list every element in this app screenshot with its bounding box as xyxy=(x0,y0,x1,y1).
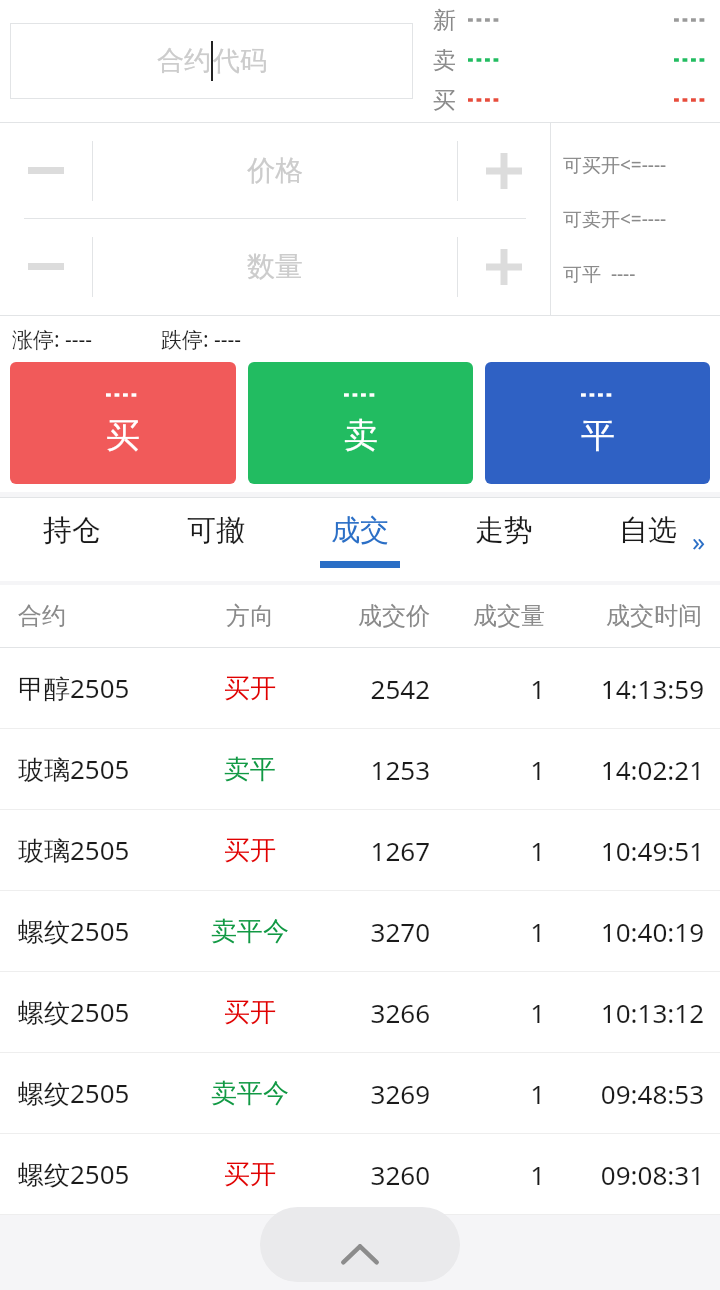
staticText: 1 xyxy=(430,833,545,868)
staticText: 卖平今 xyxy=(185,915,315,948)
staticText: 卖平今 xyxy=(185,1077,315,1110)
button[interactable]: Decrease 价格 xyxy=(0,123,92,218)
button[interactable]: 价格 xyxy=(93,123,457,218)
button[interactable]: 自选 xyxy=(576,498,720,581)
staticText: 买 xyxy=(433,86,456,115)
staticText: 可卖开<=---- xyxy=(563,206,667,232)
staticText: 螺纹2505 xyxy=(18,1075,185,1111)
staticText: 买开 xyxy=(185,1158,315,1191)
staticText: 09:08:31 xyxy=(545,1157,704,1192)
button[interactable]: 买 xyxy=(10,362,236,484)
staticText: 14:02:21 xyxy=(545,752,704,787)
staticText: 买开 xyxy=(185,834,315,867)
staticText: 1267 xyxy=(315,833,430,868)
button[interactable]: 螺纹2505 xyxy=(0,891,720,971)
staticText: 1 xyxy=(430,1157,545,1192)
staticText: 卖 xyxy=(433,46,456,75)
staticText: 成交量 xyxy=(430,601,545,631)
staticText: 1 xyxy=(430,1076,545,1111)
button[interactable]: Expand panel xyxy=(260,1207,460,1282)
staticText: 1 xyxy=(430,995,545,1030)
staticText: 买开 xyxy=(185,996,315,1029)
staticText: » xyxy=(692,523,706,557)
button[interactable]: Decrease 数量 xyxy=(0,219,92,314)
staticText: 可撤 xyxy=(187,512,245,549)
staticText: 玻璃2505 xyxy=(18,751,185,787)
staticText: 可买开<=---- xyxy=(563,152,667,178)
button[interactable]: 成交 xyxy=(288,498,432,581)
staticText: 成交 xyxy=(331,512,389,549)
button[interactable]: 可撤 xyxy=(144,498,288,581)
staticText: 玻璃2505 xyxy=(18,832,185,868)
button[interactable]: Increase 价格 xyxy=(458,123,550,218)
staticText: 10:49:51 xyxy=(545,833,704,868)
staticText: 1253 xyxy=(315,752,430,787)
staticText: 买开 xyxy=(185,672,315,705)
staticText: 涨停: ---- xyxy=(12,325,93,354)
button[interactable]: More tabs xyxy=(682,523,716,557)
staticText: 平 xyxy=(581,414,615,457)
button[interactable]: 甲醇2505 xyxy=(0,648,720,728)
staticText: 卖平 xyxy=(185,753,315,786)
button[interactable]: 数量 xyxy=(93,219,457,314)
staticText: 价格 xyxy=(247,153,303,188)
staticText: 09:48:53 xyxy=(545,1076,704,1111)
button[interactable]: 卖 xyxy=(248,362,473,484)
staticText: 卖 xyxy=(344,414,378,457)
button[interactable]: 合约 xyxy=(10,23,413,99)
button[interactable]: 螺纹2505 xyxy=(0,972,720,1052)
staticText: 可平 ---- xyxy=(563,261,636,287)
button[interactable]: Increase 数量 xyxy=(458,219,550,314)
staticText: 合约 xyxy=(18,601,185,631)
staticText: 甲醇2505 xyxy=(18,670,185,706)
staticText: 3269 xyxy=(315,1076,430,1111)
staticText: 走势 xyxy=(475,512,533,549)
staticText: 跌停: ---- xyxy=(161,325,242,354)
staticText: 10:40:19 xyxy=(545,914,704,949)
staticText: 1 xyxy=(430,752,545,787)
button[interactable]: 螺纹2505 xyxy=(0,1053,720,1133)
staticText: 14:13:59 xyxy=(545,671,704,706)
button[interactable]: 持仓 xyxy=(0,498,144,581)
staticText: 自选 xyxy=(619,512,677,549)
staticText: 3266 xyxy=(315,995,430,1030)
button[interactable]: 螺纹2505 xyxy=(0,1134,720,1214)
staticText: 成交价 xyxy=(315,601,430,631)
staticText: 1 xyxy=(430,671,545,706)
staticText: 螺纹2505 xyxy=(18,913,185,949)
staticText: 2542 xyxy=(315,671,430,706)
staticText: 方向 xyxy=(185,601,315,631)
button[interactable]: 玻璃2505 xyxy=(0,810,720,890)
staticText: 合约 xyxy=(157,44,211,78)
staticText: 持仓 xyxy=(43,512,101,549)
staticText: 成交时间 xyxy=(545,601,702,631)
staticText: 1 xyxy=(430,914,545,949)
staticText: 买 xyxy=(106,414,140,457)
button[interactable]: 平 xyxy=(485,362,710,484)
staticText: 代码 xyxy=(213,44,267,78)
staticText: 10:13:12 xyxy=(545,995,704,1030)
staticText: 螺纹2505 xyxy=(18,1156,185,1192)
button[interactable]: 玻璃2505 xyxy=(0,729,720,809)
staticText: 数量 xyxy=(247,249,303,284)
staticText: 3270 xyxy=(315,914,430,949)
staticText: 新 xyxy=(433,6,456,35)
staticText: 螺纹2505 xyxy=(18,994,185,1030)
staticText: 3260 xyxy=(315,1157,430,1192)
button[interactable]: 走势 xyxy=(432,498,576,581)
